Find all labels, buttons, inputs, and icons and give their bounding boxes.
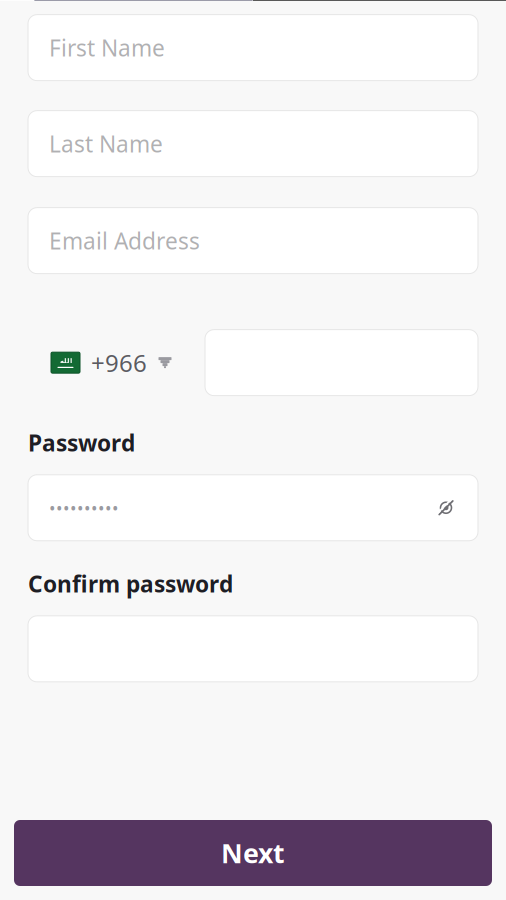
- button[interactable]: Seller Info: [34, 0, 253, 1]
- staticText: Email Address: [49, 226, 200, 256]
- button[interactable]: Email Address: [28, 208, 478, 274]
- staticText: الله: [59, 357, 71, 365]
- staticText: ••••••••••: [49, 496, 119, 519]
- staticText: Password: [28, 428, 135, 458]
- staticText: Last Name: [49, 129, 163, 159]
- button[interactable]: First Name: [28, 15, 478, 81]
- staticText: Confirm password: [28, 569, 233, 599]
- staticText: First Name: [49, 33, 165, 63]
- button[interactable]: الله: [28, 330, 172, 396]
- button[interactable]: Next: [14, 820, 492, 886]
- staticText: Next: [221, 835, 285, 871]
- staticText: +966: [91, 347, 147, 379]
- button[interactable]: ••••••••••: [28, 475, 478, 541]
- button[interactable]: Last Name: [28, 111, 478, 177]
